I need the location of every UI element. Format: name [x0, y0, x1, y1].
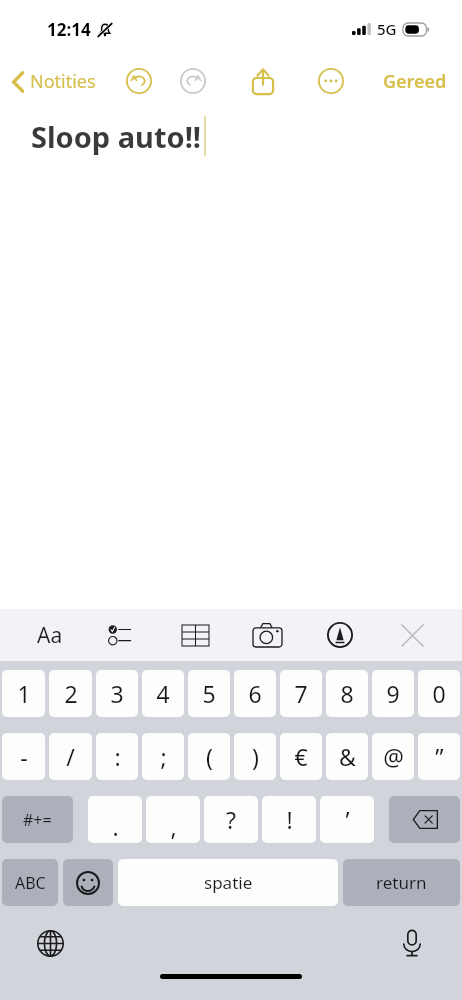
button[interactable]: Camera: [244, 612, 290, 658]
staticText: (: [206, 741, 213, 772]
button[interactable]: 0: [418, 670, 460, 717]
button[interactable]: :: [96, 733, 138, 780]
button[interactable]: €: [280, 733, 322, 780]
button[interactable]: 6: [234, 670, 276, 717]
staticText: &: [339, 741, 356, 772]
button[interactable]: spatie: [118, 859, 338, 906]
button[interactable]: /: [49, 733, 92, 780]
button[interactable]: Table: [172, 612, 218, 658]
staticText: return: [376, 871, 427, 894]
staticText: 1: [17, 678, 31, 709]
button[interactable]: ?: [204, 796, 258, 843]
button[interactable]: ): [234, 733, 276, 780]
button[interactable]: Emoji: [63, 859, 113, 906]
button[interactable]: Notities: [9, 65, 99, 98]
staticText: 5: [202, 678, 216, 709]
staticText: 3: [110, 678, 124, 709]
button[interactable]: Undo: [120, 62, 158, 100]
button[interactable]: More options: [312, 62, 350, 100]
button[interactable]: Dictate: [392, 923, 432, 963]
button[interactable]: #+=: [2, 796, 73, 843]
button[interactable]: Markup: [317, 612, 363, 658]
button[interactable]: 8: [326, 670, 368, 717]
button[interactable]: Gereed: [379, 65, 451, 98]
staticText: 0: [432, 678, 446, 709]
button[interactable]: ,: [146, 796, 200, 843]
button[interactable]: ”: [418, 733, 460, 780]
staticText: ”: [435, 741, 444, 772]
button[interactable]: 9: [372, 670, 414, 717]
button[interactable]: Backspace: [389, 796, 460, 843]
button[interactable]: 3: [96, 670, 138, 717]
button[interactable]: Change keyboard: [30, 923, 70, 963]
staticText: spatie: [204, 871, 253, 894]
staticText: ABC: [15, 872, 46, 894]
button[interactable]: &: [326, 733, 368, 780]
staticText: 8: [340, 678, 354, 709]
staticText: -: [20, 741, 28, 772]
staticText: #+=: [23, 809, 52, 831]
staticText: 12:14: [47, 18, 91, 41]
button[interactable]: -: [2, 733, 45, 780]
button[interactable]: 5: [188, 670, 230, 717]
button[interactable]: return: [343, 859, 460, 906]
button[interactable]: Close keyboard: [389, 612, 435, 658]
staticText: !: [286, 804, 293, 835]
button[interactable]: 7: [280, 670, 322, 717]
button[interactable]: .: [88, 796, 142, 843]
staticText: ;: [160, 741, 167, 772]
staticText: /: [66, 741, 75, 772]
button[interactable]: 4: [142, 670, 184, 717]
staticText: Notities: [30, 69, 96, 94]
button[interactable]: !: [262, 796, 316, 843]
staticText: 2: [64, 678, 78, 709]
button[interactable]: 2: [49, 670, 92, 717]
button[interactable]: ABC: [2, 859, 58, 906]
staticText: 7: [294, 678, 308, 709]
button[interactable]: ;: [142, 733, 184, 780]
staticText: @: [383, 741, 404, 772]
button[interactable]: Text format: [27, 612, 73, 658]
staticText: ): [252, 741, 259, 772]
button[interactable]: @: [372, 733, 414, 780]
staticText: Aa: [37, 621, 63, 650]
staticText: 4: [156, 678, 170, 709]
staticText: ,: [170, 811, 177, 842]
staticText: 6: [248, 678, 262, 709]
staticText: €: [294, 741, 308, 772]
staticText: 5G: [377, 19, 397, 39]
button[interactable]: Share: [244, 62, 282, 100]
button[interactable]: (: [188, 733, 230, 780]
button[interactable]: ’: [320, 796, 374, 843]
button[interactable]: 1: [2, 670, 45, 717]
button[interactable]: Checklist: [99, 612, 145, 658]
staticText: ’: [345, 804, 350, 835]
staticText: .: [112, 811, 119, 842]
button[interactable]: Redo: [174, 62, 212, 100]
staticText: Gereed: [383, 69, 447, 94]
staticText: 9: [386, 678, 400, 709]
staticText: ?: [226, 804, 236, 835]
staticText: Sloop auto!!: [31, 117, 202, 156]
staticText: :: [114, 741, 121, 772]
